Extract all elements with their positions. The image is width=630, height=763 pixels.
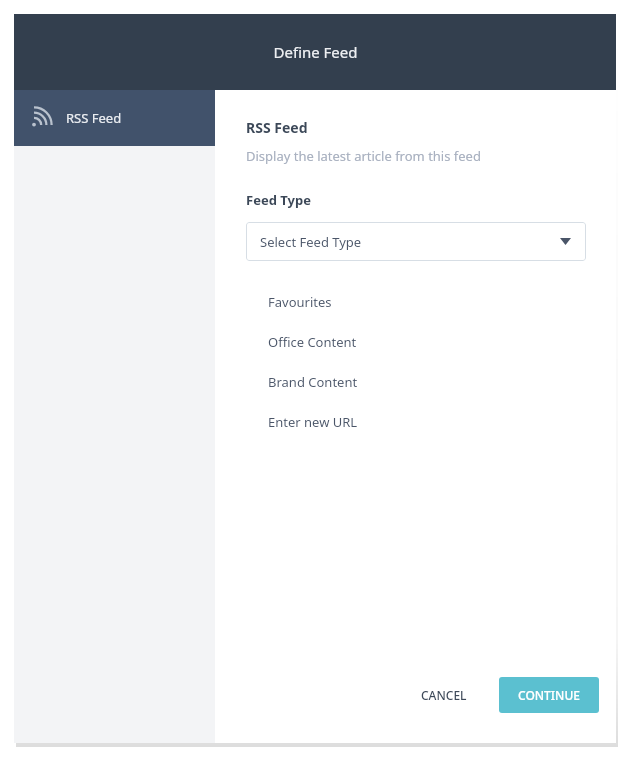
staticText: CANCEL [421, 687, 467, 703]
button[interactable]: Brand Content [246, 362, 586, 402]
button[interactable]: Select Feed Type [246, 222, 586, 261]
staticText: Define Feed [273, 42, 358, 62]
button[interactable]: CONTINUE [499, 677, 599, 713]
staticText: RSS Feed [66, 109, 122, 127]
staticText: Enter new URL [268, 413, 358, 431]
other: RSS Feed [30, 108, 50, 128]
staticText: RSS Feed [246, 118, 308, 137]
button[interactable]: RSS Feed [14, 90, 215, 146]
button[interactable]: Office Content [246, 322, 586, 362]
staticText: Brand Content [268, 373, 358, 391]
button[interactable]: Favourites [246, 282, 586, 322]
staticText: Feed Type [246, 191, 311, 209]
staticText: Favourites [268, 293, 332, 311]
staticText: CONTINUE [518, 687, 580, 703]
staticText: Display the latest article from this fee… [246, 147, 481, 165]
button[interactable]: Enter new URL [246, 402, 586, 442]
staticText: Office Content [268, 333, 357, 351]
button[interactable]: CANCEL [407, 677, 481, 713]
staticText: Select Feed Type [260, 233, 362, 251]
